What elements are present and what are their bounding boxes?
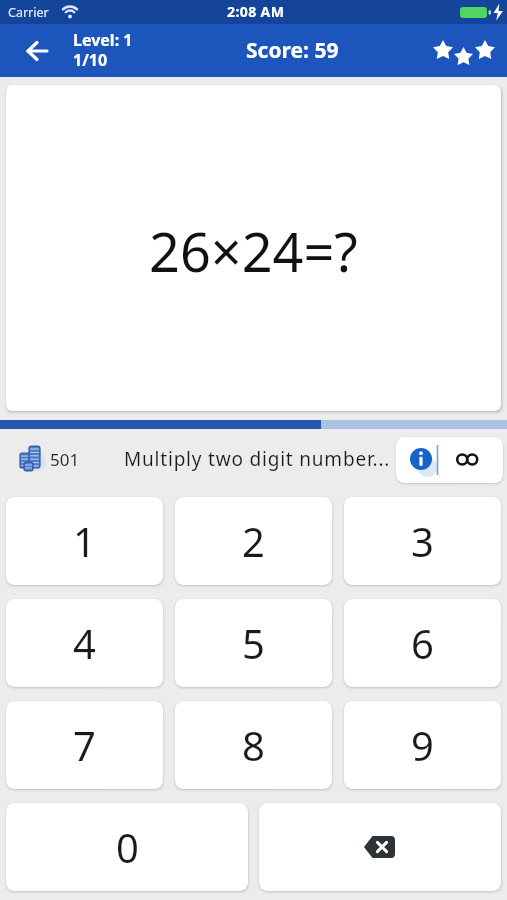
staticText: 26×24=?	[149, 214, 358, 288]
button[interactable]: 4	[6, 599, 163, 687]
staticText: Level: 1	[73, 29, 133, 51]
button[interactable]: 7	[6, 701, 163, 789]
staticText: 7	[73, 718, 96, 772]
staticText: Multiply two digit number...	[124, 446, 391, 472]
button[interactable]: 8	[175, 701, 332, 789]
staticText: 0	[116, 820, 139, 874]
staticText: 501	[50, 448, 80, 471]
button[interactable]: 5	[175, 599, 332, 687]
staticText: 1	[73, 514, 96, 568]
button[interactable]: 2	[175, 497, 332, 585]
staticText: 5	[242, 616, 265, 670]
staticText: 3	[411, 514, 434, 568]
staticText: 8	[242, 718, 265, 772]
button[interactable]	[26, 40, 50, 62]
staticText: 9	[411, 718, 434, 772]
button[interactable]: 6	[344, 599, 501, 687]
button[interactable]: 0	[6, 803, 248, 891]
button[interactable]: 9	[344, 701, 501, 789]
button[interactable]: 3	[344, 497, 501, 585]
button[interactable]: 1	[6, 497, 163, 585]
staticText: 2	[242, 514, 265, 568]
staticText: Score: 59	[246, 36, 339, 65]
button[interactable]	[259, 803, 501, 891]
staticText: 1/10	[73, 49, 108, 71]
staticText: 2:08 AM	[227, 2, 285, 21]
button[interactable]	[396, 437, 503, 483]
staticText: 6	[411, 616, 434, 670]
staticText: Carrier	[8, 4, 49, 21]
staticText: 4	[73, 616, 96, 670]
